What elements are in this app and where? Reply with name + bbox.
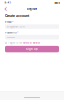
staticText: ▮▮▮ ▮ [54,1,59,4]
button[interactable]: Terms of Service [23,41,40,44]
staticText: Email [5,20,12,24]
staticText: * [17,31,18,34]
button[interactable]: Sign up [5,46,59,52]
staticText: Sign up [26,47,38,51]
staticText: Password [5,31,17,34]
button[interactable]: Back [3,6,8,12]
staticText: Create account [5,14,29,18]
staticText: Register [27,7,37,11]
staticText: •••••••• [7,36,15,39]
staticText: * [12,20,13,24]
staticText: I agree to the [8,41,22,44]
staticText: Terms of Service [23,41,40,44]
staticText: 9:41 [4,1,10,4]
staticText: you@email.com [7,25,25,28]
